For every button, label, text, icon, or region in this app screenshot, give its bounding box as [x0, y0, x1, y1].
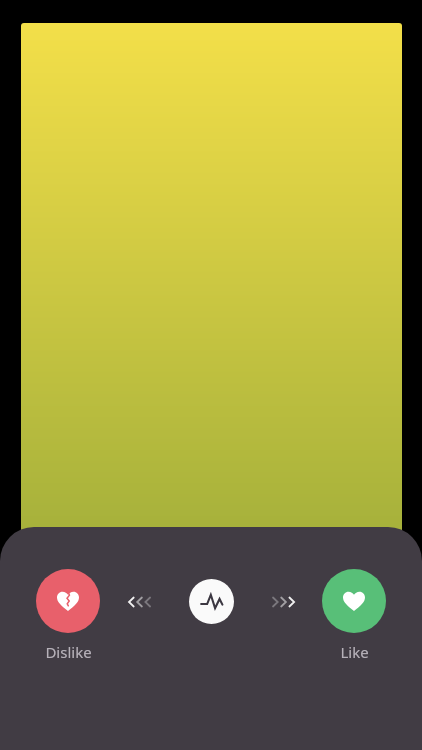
button[interactable]: Dislike — [36, 569, 100, 662]
button[interactable]: Swipe left to dislike — [129, 597, 150, 607]
button[interactable]: Activity — [189, 579, 234, 624]
button[interactable]: Like — [322, 569, 386, 662]
button[interactable]: Swipe right to like — [273, 597, 294, 607]
staticText: Dislike — [45, 642, 92, 662]
button[interactable]: Profile photo — [21, 23, 402, 533]
staticText: Like — [340, 642, 369, 662]
